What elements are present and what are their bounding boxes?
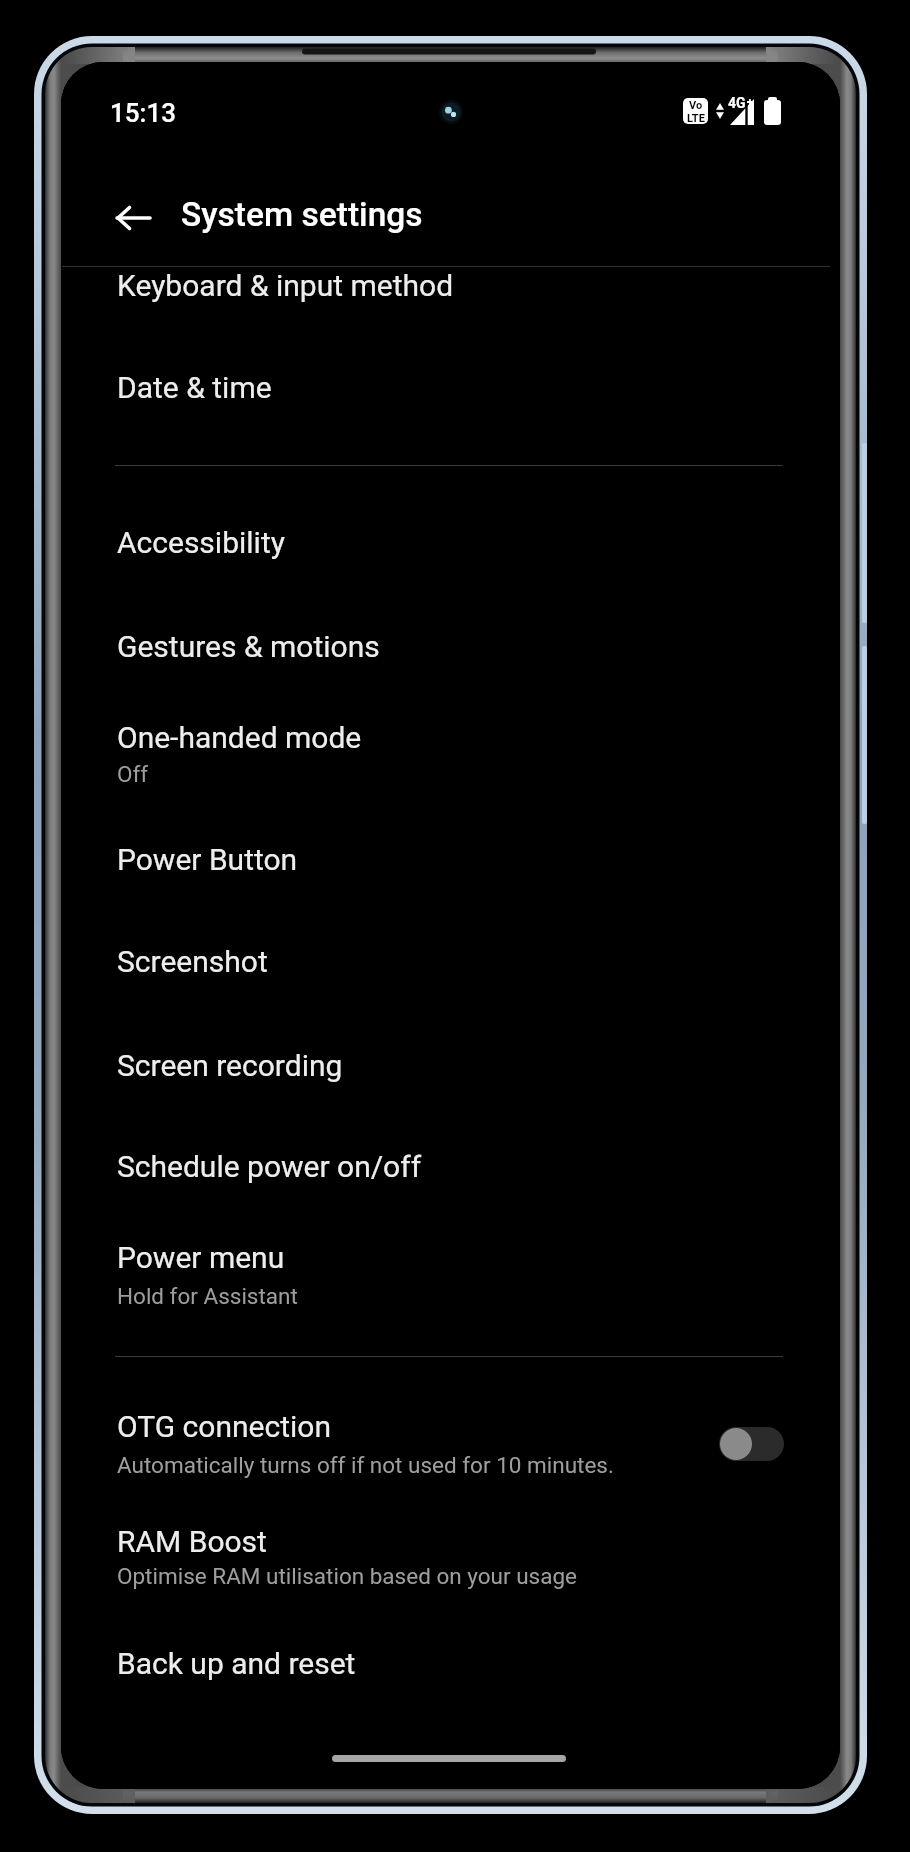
button[interactable]: OTG connection toggle (719, 1427, 784, 1461)
button[interactable]: Accessibility (61, 462, 840, 592)
staticText: Gestures & motions (117, 629, 380, 664)
button[interactable]: Date & time (61, 334, 840, 463)
staticText: Power Button (117, 842, 298, 877)
staticText: Automatically turns off if not used for … (117, 1452, 614, 1478)
button[interactable]: Screen recording (61, 1011, 840, 1113)
staticText: Hold for Assistant (117, 1283, 298, 1309)
staticText: 4G (728, 95, 746, 111)
button[interactable]: One-handed mode (61, 689, 840, 815)
staticText: Optimise RAM utilisation based on your u… (117, 1563, 578, 1589)
staticText: Screen recording (117, 1048, 343, 1083)
staticText: Power menu (117, 1240, 285, 1275)
staticText: Schedule power on/off (117, 1149, 422, 1184)
staticText: Vo (689, 99, 703, 112)
button[interactable]: Back (111, 194, 159, 242)
button[interactable]: Screenshot (61, 908, 840, 1011)
button[interactable]: Power menu (61, 1209, 840, 1359)
staticText: 15:13 (110, 98, 177, 128)
button[interactable]: Schedule power on/off (61, 1113, 840, 1209)
staticText: RAM Boost (117, 1524, 267, 1559)
staticText: Back up and reset (117, 1646, 356, 1681)
button[interactable]: Keyboard & input method (61, 267, 840, 334)
staticText: LTE (687, 112, 705, 124)
staticText: Screenshot (117, 944, 268, 979)
button[interactable]: RAM Boost (61, 1501, 840, 1618)
staticText: Off (117, 761, 149, 787)
button[interactable]: Gestures & motions (61, 592, 840, 690)
button[interactable]: OTG connection (61, 1359, 840, 1502)
staticText: OTG connection (117, 1409, 331, 1444)
staticText: Accessibility (117, 525, 285, 560)
button[interactable]: Back up and reset (61, 1618, 840, 1789)
staticText: Date & time (117, 370, 272, 405)
button[interactable]: Power Button (61, 815, 840, 908)
staticText: Keyboard & input method (117, 268, 454, 303)
staticText: One-handed mode (117, 720, 362, 755)
staticText: System settings (181, 195, 423, 234)
